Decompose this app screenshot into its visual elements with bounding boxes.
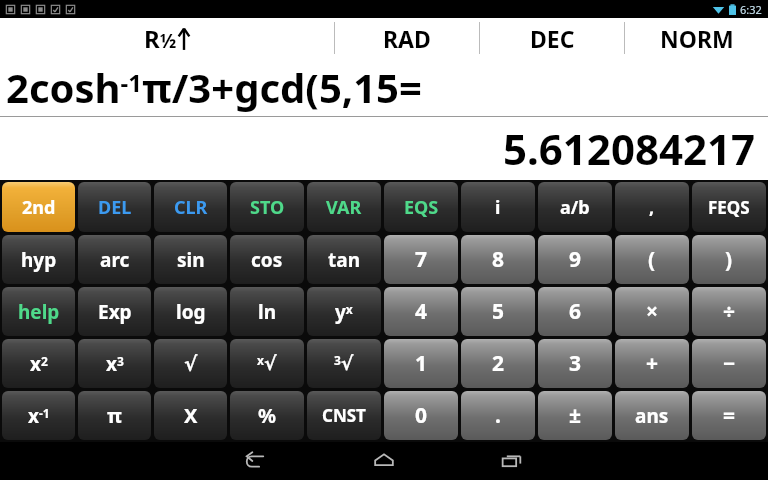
staticText: ans [635, 403, 669, 429]
staticText: log [176, 299, 206, 325]
staticText: 2 [492, 349, 505, 378]
button[interactable]: 5 [461, 287, 535, 336]
button[interactable]: − [692, 339, 766, 388]
button[interactable]: ) [692, 235, 766, 284]
staticText: i [495, 195, 501, 220]
button[interactable]: hyp [2, 235, 75, 284]
staticText: EQS [404, 195, 439, 220]
staticText: x2 [30, 351, 48, 377]
button[interactable]: help [2, 287, 75, 336]
button[interactable]: cos [230, 235, 304, 284]
staticText: CLR [174, 195, 208, 220]
button[interactable]: ans [615, 391, 689, 440]
button[interactable]: 0 [384, 391, 458, 440]
button[interactable]: EQS [384, 182, 458, 232]
staticText: sin [177, 247, 205, 273]
button[interactable]: 4 [384, 287, 458, 336]
staticText: 5 [492, 297, 505, 326]
staticText: x3 [106, 351, 124, 377]
button[interactable]: NORM [625, 18, 768, 58]
button[interactable]: ÷ [692, 287, 766, 336]
button[interactable]: arc [78, 235, 151, 284]
button[interactable]: X [154, 391, 227, 440]
staticText: CNST [322, 404, 366, 427]
button[interactable]: ln [230, 287, 304, 336]
button[interactable]: RAD [335, 18, 479, 58]
button[interactable]: CNST [307, 391, 381, 440]
staticText: help [18, 299, 60, 325]
staticText: x√ [257, 352, 277, 375]
button[interactable]: STO [230, 182, 304, 232]
button[interactable]: . [461, 391, 535, 440]
button[interactable]: log [154, 287, 227, 336]
staticText: ÷ [723, 297, 736, 326]
button[interactable]: 1 [384, 339, 458, 388]
button[interactable]: π [78, 391, 151, 440]
button[interactable]: a/b [538, 182, 612, 232]
staticText: STO [250, 195, 285, 220]
button[interactable]: x root [230, 339, 304, 388]
staticText: yx [335, 299, 353, 325]
button[interactable]: x cubed [78, 339, 151, 388]
button[interactable]: 3 [538, 339, 612, 388]
button[interactable]: = [692, 391, 766, 440]
staticText: . [495, 401, 501, 430]
staticText: = [723, 401, 736, 430]
button[interactable]: + [615, 339, 689, 388]
staticText: 2cosh-1π/3+gcd(5,15= [6, 60, 422, 114]
button[interactable]: 7 [384, 235, 458, 284]
button[interactable]: cube root [307, 339, 381, 388]
button[interactable]: sin [154, 235, 227, 284]
button[interactable]: FEQS [692, 182, 766, 232]
staticText: ln [258, 299, 277, 325]
staticText: 4 [415, 297, 428, 326]
button[interactable]: tan [307, 235, 381, 284]
button[interactable]: x inverse [2, 391, 75, 440]
staticText: , [649, 195, 655, 220]
button[interactable]: ( [615, 235, 689, 284]
button[interactable]: DEL [78, 182, 151, 232]
button[interactable]: i [461, 182, 535, 232]
button[interactable]: CLR [154, 182, 227, 232]
staticText: NORM [660, 23, 734, 54]
button[interactable]: y to the x [307, 287, 381, 336]
staticText: a/b [560, 195, 590, 220]
button[interactable]: x squared [2, 339, 75, 388]
button[interactable]: √ [154, 339, 227, 388]
button[interactable]: DEC [480, 18, 624, 58]
button[interactable]: × [615, 287, 689, 336]
staticText: X [184, 402, 198, 429]
button[interactable]: 2nd [2, 182, 75, 232]
staticText: 0 [415, 401, 428, 430]
staticText: 6:32 [740, 2, 762, 17]
button[interactable]: 9 [538, 235, 612, 284]
staticText: R½ [144, 22, 177, 55]
button[interactable]: VAR [307, 182, 381, 232]
staticText: cos [251, 247, 283, 273]
staticText: % [258, 402, 277, 429]
staticText: tan [328, 247, 360, 273]
staticText: ) [725, 245, 733, 274]
button[interactable]: 6 [538, 287, 612, 336]
button[interactable]: Exp [78, 287, 151, 336]
staticText: arc [100, 247, 130, 273]
button[interactable]: , [615, 182, 689, 232]
button[interactable]: % [230, 391, 304, 440]
staticText: × [646, 297, 659, 326]
staticText: DEC [530, 23, 575, 54]
button[interactable]: 2 [461, 339, 535, 388]
staticText: − [723, 349, 736, 378]
button[interactable]: 8 [461, 235, 535, 284]
staticText: RAD [383, 23, 431, 54]
staticText: 9 [569, 245, 582, 274]
staticText: hyp [21, 247, 57, 273]
staticText: Exp [98, 299, 132, 325]
staticText: 5.612084217 [503, 120, 756, 177]
staticText: 6 [569, 297, 582, 326]
staticText: 2nd [22, 195, 56, 220]
staticText: + [646, 349, 659, 378]
staticText: VAR [326, 195, 362, 220]
staticText: 8 [492, 245, 505, 274]
button[interactable]: ± [538, 391, 612, 440]
staticText: 1 [415, 349, 428, 378]
